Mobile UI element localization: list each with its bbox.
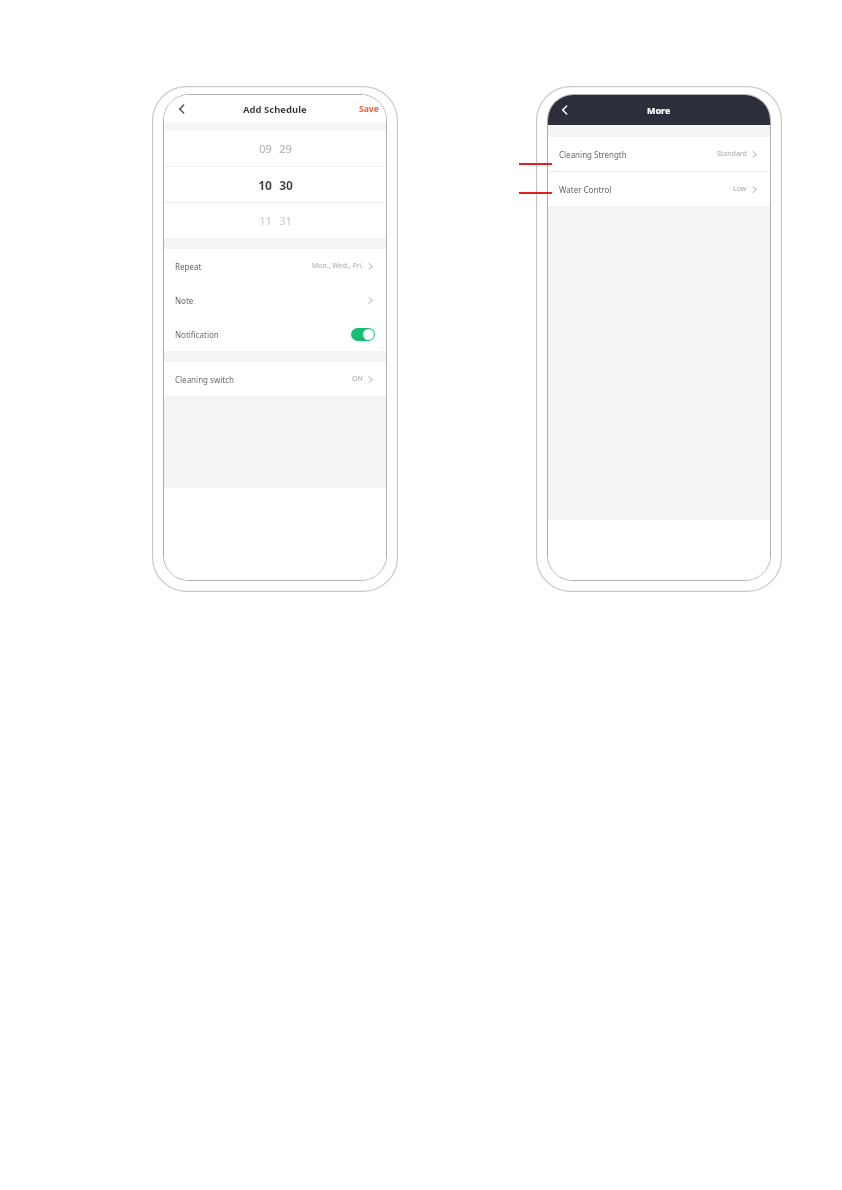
staticText: Save bbox=[359, 103, 379, 115]
button[interactable]: Water Control bbox=[548, 172, 770, 206]
button[interactable]: Notification toggle bbox=[351, 328, 375, 341]
staticText: ON bbox=[352, 374, 363, 384]
staticText: 10 bbox=[258, 177, 272, 193]
staticText: 30 bbox=[279, 177, 293, 193]
button[interactable]: Back bbox=[172, 99, 192, 119]
staticText: Notification bbox=[175, 329, 219, 340]
button[interactable]: Back bbox=[555, 100, 575, 120]
staticText: Add Schedule bbox=[243, 103, 307, 116]
staticText: Repeat bbox=[175, 261, 202, 272]
staticText: 31 bbox=[279, 213, 292, 228]
button[interactable]: Cleaning switch bbox=[164, 362, 386, 396]
button[interactable]: Notification bbox=[164, 317, 386, 351]
button[interactable]: Repeat bbox=[164, 249, 386, 283]
staticText: Water Control bbox=[559, 184, 612, 195]
button[interactable]: Save bbox=[359, 103, 379, 115]
staticText: Note bbox=[175, 295, 194, 306]
staticText: 09 bbox=[259, 141, 272, 156]
staticText: More bbox=[647, 104, 671, 116]
staticText: Low bbox=[733, 184, 747, 194]
button[interactable]: Cleaning Strength bbox=[548, 137, 770, 171]
button[interactable]: Note bbox=[164, 283, 386, 317]
staticText: 29 bbox=[279, 141, 292, 156]
staticText: 11 bbox=[259, 213, 272, 228]
staticText: Cleaning Strength bbox=[559, 149, 627, 160]
staticText: Mon., Wed., Fri. bbox=[312, 261, 363, 271]
staticText: Cleaning switch bbox=[175, 374, 234, 385]
staticText: Standard bbox=[717, 149, 747, 159]
